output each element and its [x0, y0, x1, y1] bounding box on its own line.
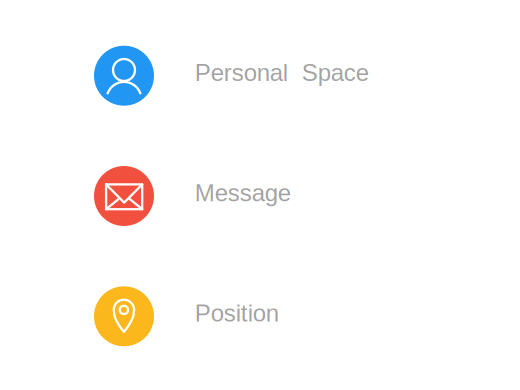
button[interactable]: Position	[0, 286, 520, 346]
staticText: Position	[195, 300, 279, 327]
staticText: Message	[195, 180, 291, 206]
staticText: Personal Space	[195, 59, 369, 86]
button[interactable]: Personal Space	[0, 46, 520, 106]
button[interactable]: Message	[0, 166, 520, 226]
